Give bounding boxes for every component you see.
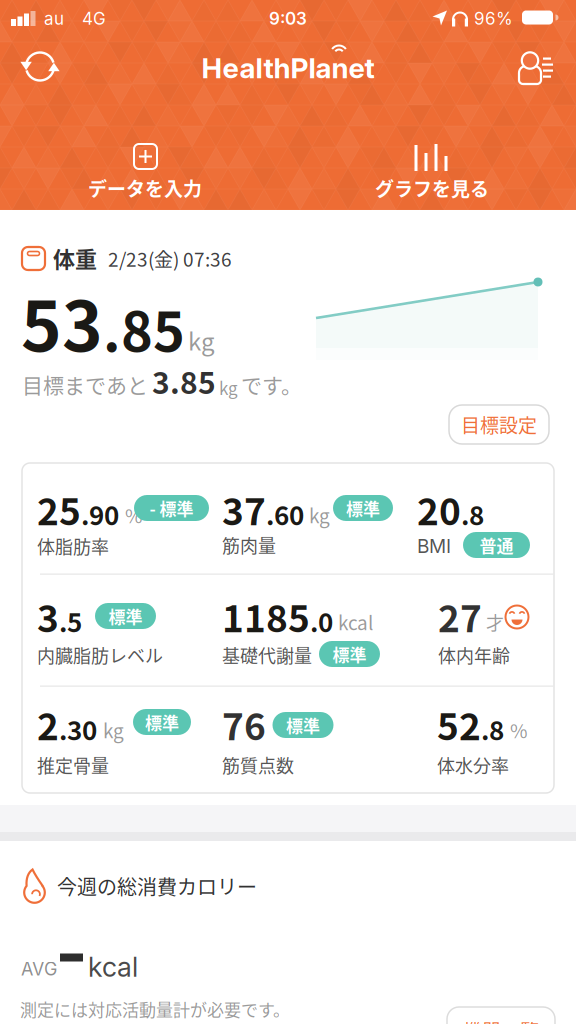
- staticText: 筋質点数: [222, 752, 294, 778]
- button[interactable]: 目標設定: [449, 405, 549, 444]
- staticText: 機器一覧: [463, 1016, 539, 1024]
- staticText: 25.90: [37, 483, 119, 535]
- staticText: au: [44, 8, 64, 29]
- staticText: 測定には対応活動量計が必要です。: [20, 997, 290, 1021]
- staticText: 76: [222, 697, 266, 751]
- staticText: 標準: [346, 496, 380, 520]
- staticText: kg: [309, 501, 330, 529]
- staticText: - 標準: [149, 496, 193, 520]
- staticText: kcal: [88, 951, 138, 983]
- staticText: 体脂肪率: [37, 533, 109, 559]
- staticText: %: [510, 716, 527, 744]
- staticText: 才: [486, 609, 504, 635]
- staticText: 目標設定: [461, 411, 537, 438]
- staticText: kg: [188, 323, 215, 357]
- staticText: 20.8: [417, 483, 484, 535]
- staticText: 4G: [82, 8, 106, 29]
- staticText: 標準: [145, 710, 179, 734]
- staticText: kg: [103, 716, 124, 744]
- staticText: 内臓脂肪レベル: [37, 642, 163, 668]
- staticText: グラフを見る: [375, 174, 489, 202]
- button[interactable]: データを入力: [0, 120, 288, 210]
- staticText: 標準: [108, 604, 142, 628]
- staticText: 37.60: [222, 483, 304, 535]
- staticText: 基礎代謝量: [222, 642, 312, 668]
- staticText: 目標まであと: [22, 369, 148, 399]
- staticText: 2/23(金) 07:36: [108, 245, 232, 272]
- staticText: 筋肉量: [222, 532, 276, 558]
- staticText: です。: [241, 369, 302, 399]
- staticText: 体水分率: [437, 752, 509, 778]
- staticText: 体内年齢: [438, 642, 510, 668]
- staticText: 3.85: [152, 359, 216, 403]
- staticText: %: [125, 501, 142, 529]
- staticText: 3.5: [37, 590, 82, 642]
- staticText: 推定骨量: [37, 752, 109, 778]
- staticText: 27: [438, 589, 482, 643]
- staticText: 体重: [53, 242, 97, 274]
- staticText: 2.30: [37, 698, 97, 750]
- staticText: 1185.0: [222, 590, 333, 642]
- staticText: 96%: [474, 8, 513, 29]
- staticText: 9:03: [269, 8, 307, 29]
- staticText: 53.85: [21, 273, 185, 370]
- staticText: 普通: [479, 533, 513, 557]
- staticText: HealthPlanet: [201, 51, 374, 85]
- staticText: 標準: [332, 642, 366, 666]
- staticText: データを入力: [88, 174, 202, 202]
- staticText: AVG: [21, 958, 57, 980]
- staticText: BMI: [417, 534, 451, 557]
- staticText: 52.8: [437, 698, 504, 750]
- staticText: kg: [219, 375, 238, 400]
- button[interactable]: グラフを見る: [288, 120, 576, 210]
- staticText: kcal: [338, 608, 373, 636]
- button[interactable]: プロフィール: [515, 40, 559, 92]
- staticText: 今週の総消費カロリー: [57, 871, 257, 900]
- button[interactable]: 機器一覧: [447, 1007, 555, 1024]
- button[interactable]: 更新: [10, 37, 70, 97]
- staticText: 標準: [286, 713, 320, 737]
